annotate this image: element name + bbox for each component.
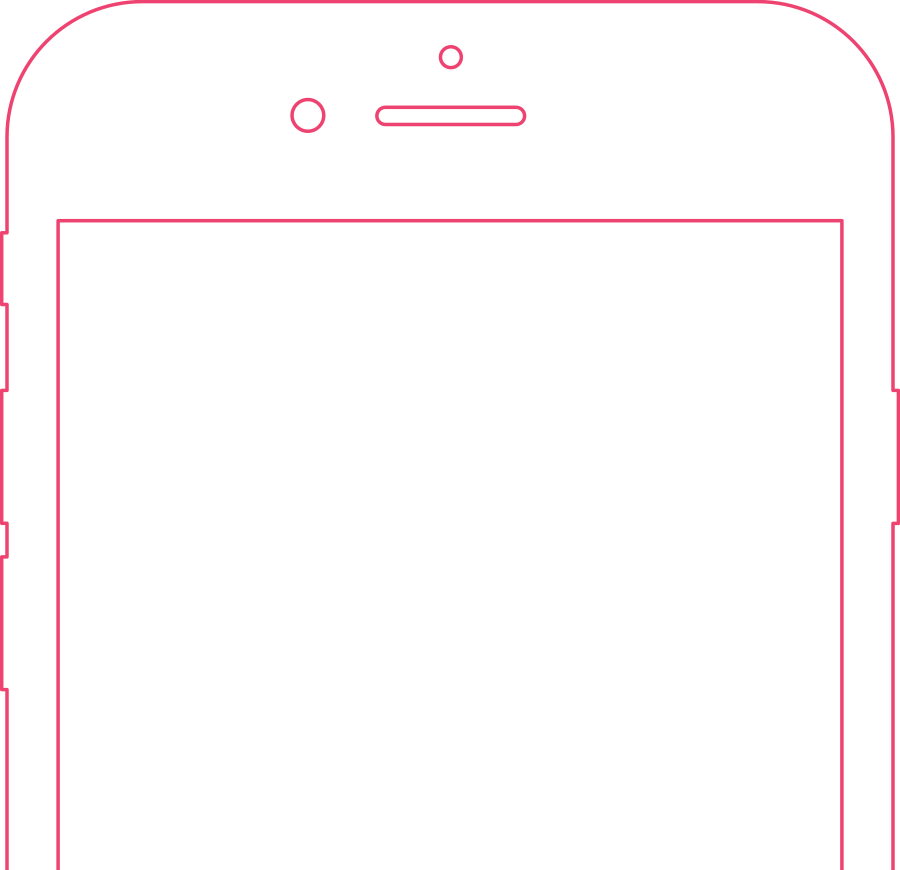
button[interactable]: Volume up (0, 390, 22, 523)
button[interactable]: Side button (878, 390, 900, 523)
button[interactable]: Volume down (0, 557, 22, 690)
button[interactable]: Ring/Silent switch (0, 233, 22, 304)
